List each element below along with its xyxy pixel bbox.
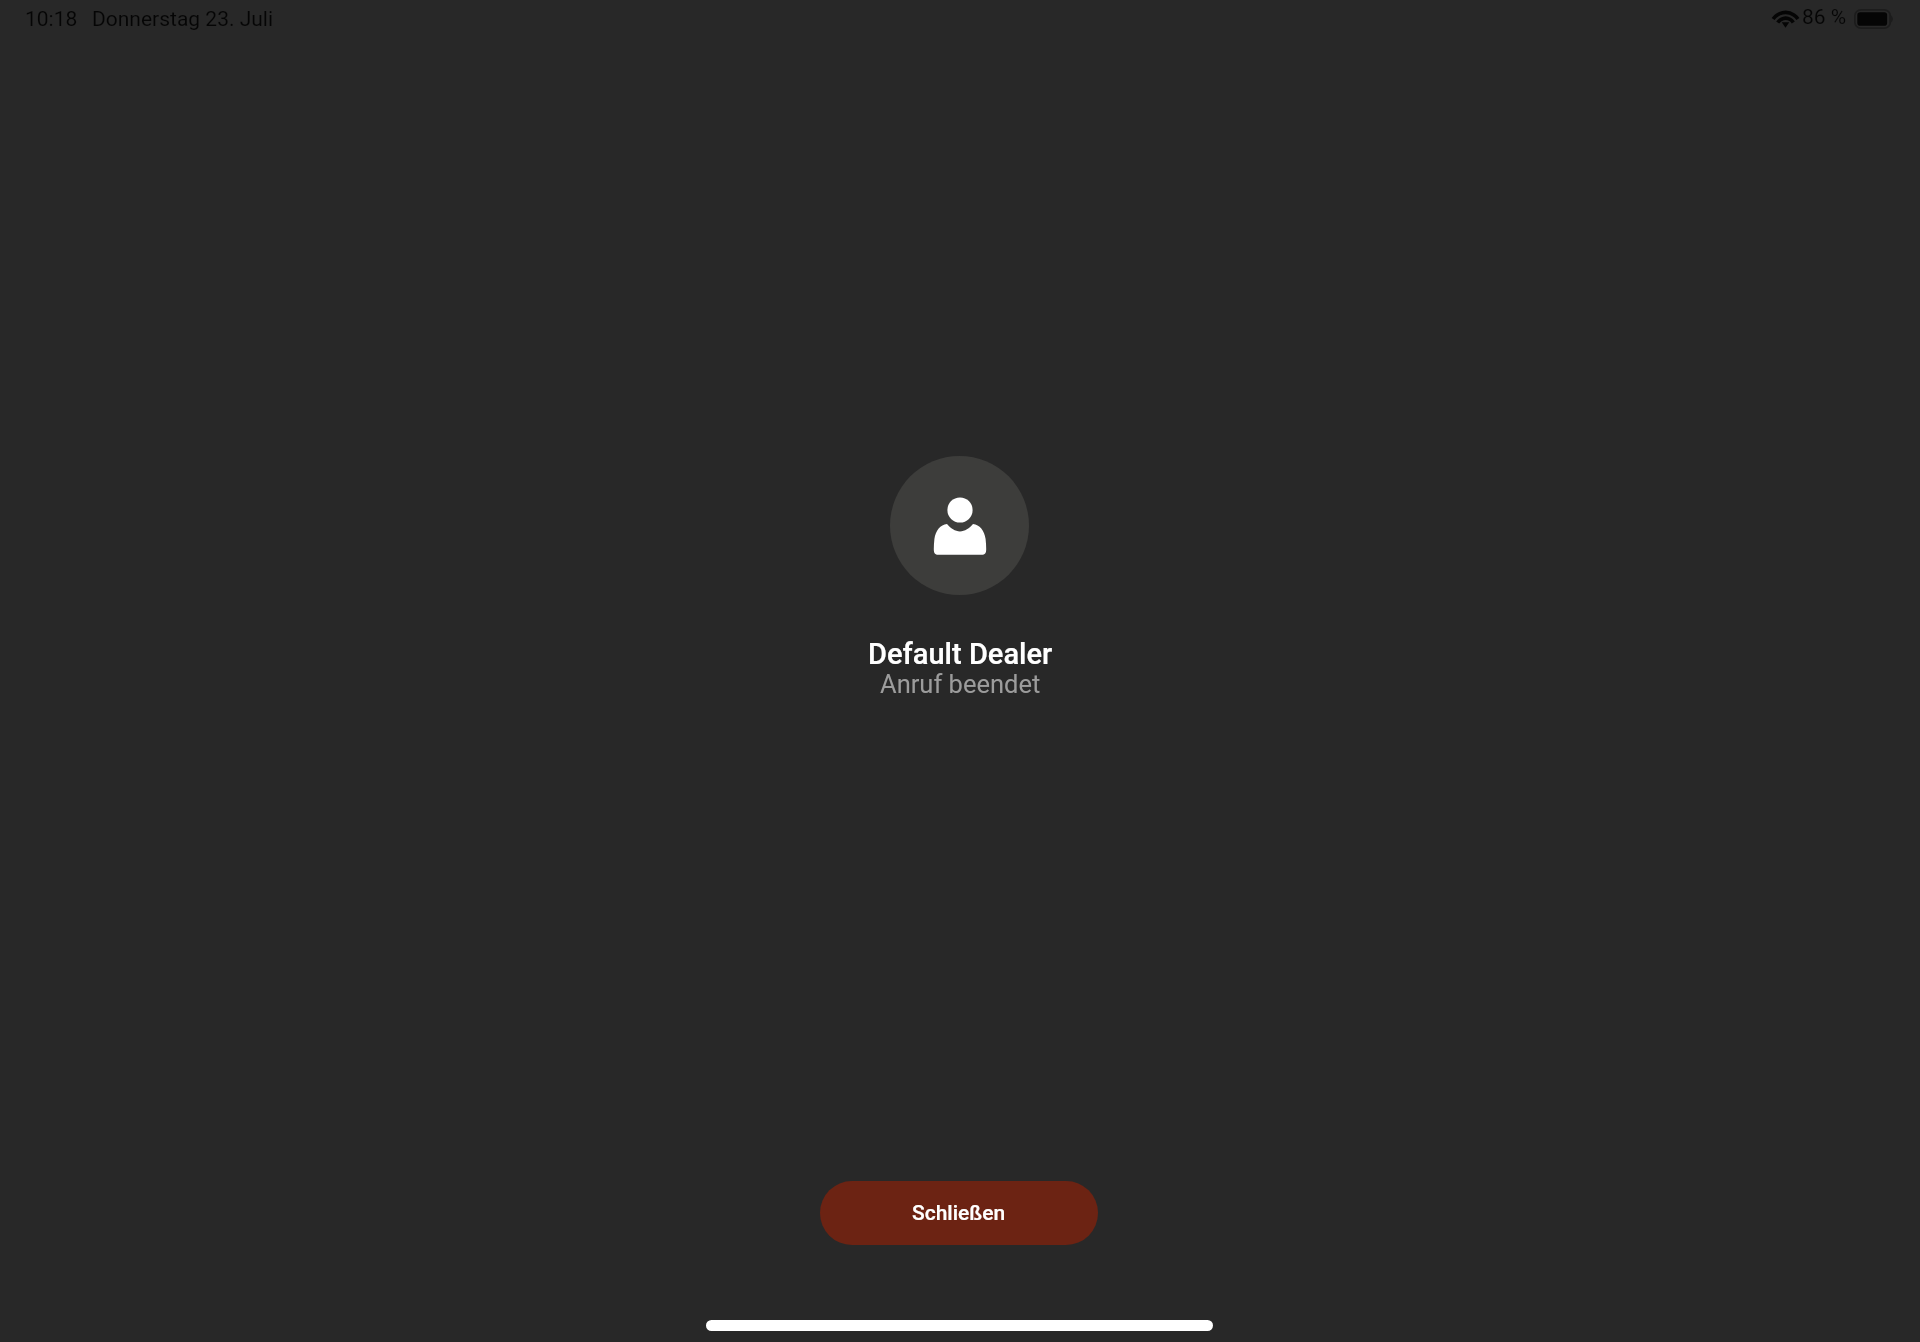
other: Wi-Fi <box>1774 10 1797 27</box>
other: Battery 86 percent <box>1854 9 1896 29</box>
staticText: Schließen <box>912 1201 1006 1226</box>
button[interactable]: Schließen <box>820 1181 1098 1245</box>
staticText: Donnerstag 23. Juli <box>92 7 274 32</box>
staticText: Anruf beendet <box>880 669 1041 699</box>
staticText: 86 % <box>1802 5 1847 30</box>
staticText: 10:18 <box>25 7 78 32</box>
staticText: Default Dealer <box>868 637 1053 671</box>
